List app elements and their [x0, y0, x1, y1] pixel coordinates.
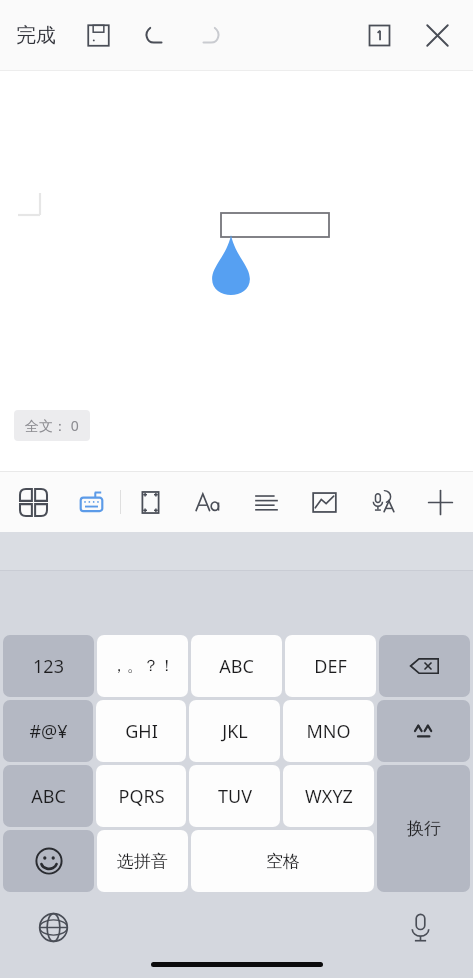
button[interactable]: ABC — [3, 765, 93, 827]
button[interactable]: WXYZ — [283, 765, 374, 827]
staticText: 选拼音 — [117, 851, 168, 872]
button[interactable]: Keyboard — [62, 472, 120, 532]
button[interactable]: Redo — [190, 15, 230, 55]
button[interactable]: Close — [417, 15, 457, 55]
staticText: GHI — [125, 719, 158, 744]
button[interactable]: GHI — [96, 700, 186, 762]
button[interactable]: 选拼音 — [97, 830, 188, 892]
button[interactable]: Change language — [30, 904, 76, 950]
button[interactable]: 完成 — [8, 15, 64, 56]
button[interactable]: Blocks — [4, 472, 62, 532]
staticText: JKL — [222, 719, 248, 744]
staticText: ，。？！ — [111, 656, 175, 676]
button[interactable]: Font size — [179, 472, 237, 532]
button[interactable]: DEF — [285, 635, 376, 697]
button[interactable]: TUV — [189, 765, 280, 827]
staticText: 123 — [33, 654, 64, 679]
button[interactable]: 换行 — [377, 765, 470, 892]
button[interactable]: ，。？！ — [97, 635, 188, 697]
staticText: ABC — [31, 784, 66, 809]
staticText: 全文： 0 — [25, 416, 79, 435]
staticText: ABC — [219, 654, 254, 679]
staticText: PQRS — [118, 784, 165, 809]
staticText: #@¥ — [29, 719, 68, 744]
button[interactable]: PQRS — [96, 765, 186, 827]
button[interactable]: Voice input — [397, 904, 443, 950]
staticText: TUV — [218, 784, 252, 809]
button[interactable]: Voice to text — [353, 472, 411, 532]
button[interactable]: 空格 — [191, 830, 374, 892]
button[interactable]: Page count — [359, 15, 399, 55]
button[interactable]: Caret symbols — [377, 700, 470, 762]
button[interactable]: Emoji — [3, 830, 94, 892]
staticText: MNO — [306, 719, 351, 744]
staticText: 换行 — [407, 818, 441, 839]
staticText: DEF — [314, 654, 347, 679]
button[interactable]: #@¥ — [3, 700, 93, 762]
button[interactable]: Undo — [134, 15, 174, 55]
button[interactable]: JKL — [189, 700, 280, 762]
staticText: 完成 — [16, 23, 56, 48]
button[interactable]: 全文： 0 — [14, 410, 90, 441]
staticText: 空格 — [266, 851, 300, 872]
button[interactable]: Save — [78, 15, 118, 55]
staticText: WXYZ — [305, 784, 353, 809]
button[interactable]: 123 — [3, 635, 94, 697]
button[interactable]: ABC — [191, 635, 282, 697]
button[interactable]: Insert image — [295, 472, 353, 532]
button[interactable]: Align — [237, 472, 295, 532]
button[interactable]: Crop — [121, 472, 179, 532]
button[interactable]: Add — [411, 472, 469, 532]
button[interactable]: Delete — [379, 635, 470, 697]
button[interactable]: MNO — [283, 700, 374, 762]
